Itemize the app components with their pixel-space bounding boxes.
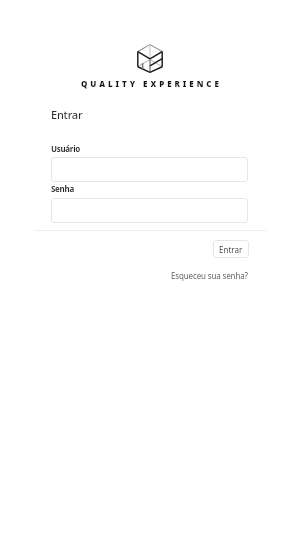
staticText: Entrar — [219, 244, 243, 255]
staticText: Usuário — [51, 143, 80, 154]
staticText: QUALITY EXPERIENCE — [81, 78, 222, 89]
button[interactable]: Entrar — [213, 240, 249, 258]
button[interactable]: Text field — [51, 198, 248, 223]
button[interactable]: Text field — [51, 157, 248, 182]
staticText: Entrar — [51, 107, 83, 122]
other: Quality Experience logo — [137, 44, 163, 73]
button[interactable]: Esqueceu sua senha? — [171, 270, 248, 281]
staticText: Senha — [51, 183, 74, 194]
staticText: Esqueceu sua senha? — [171, 270, 248, 281]
